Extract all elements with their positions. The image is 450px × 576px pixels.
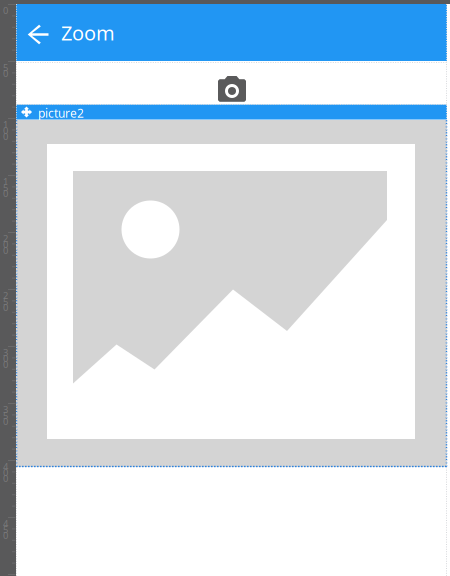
staticText: 0 bbox=[3, 187, 8, 200]
staticText: 4 bbox=[3, 517, 8, 530]
staticText: Zoom bbox=[61, 19, 115, 46]
button[interactable]: Zoom bbox=[16, 4, 447, 61]
staticText: 0 bbox=[3, 415, 8, 428]
staticText: 0 bbox=[3, 358, 8, 371]
staticText: 3 bbox=[3, 346, 8, 359]
button[interactable]: Camera bbox=[16, 61, 447, 105]
staticText: 0 bbox=[3, 130, 8, 143]
staticText: 3 bbox=[3, 403, 8, 416]
staticText: 0 bbox=[3, 301, 8, 314]
staticText: 0 bbox=[3, 4, 8, 17]
staticText: 0 bbox=[3, 466, 8, 479]
staticText: picture2 bbox=[38, 105, 84, 121]
staticText: 2 bbox=[3, 289, 8, 302]
staticText: 0 bbox=[3, 529, 8, 542]
staticText: 5 bbox=[3, 61, 8, 74]
staticText: 5 bbox=[3, 181, 8, 194]
staticText: 2 bbox=[3, 232, 8, 245]
staticText: 0 bbox=[3, 352, 8, 365]
staticText: 5 bbox=[3, 409, 8, 422]
staticText: 0 bbox=[3, 472, 8, 485]
staticText: 0 bbox=[3, 238, 8, 251]
staticText: 0 bbox=[3, 67, 8, 80]
staticText: 1 bbox=[3, 118, 8, 131]
staticText: 0 bbox=[3, 244, 8, 257]
staticText: 4 bbox=[3, 460, 8, 473]
staticText: 0 bbox=[3, 124, 8, 137]
staticText: 1 bbox=[3, 175, 8, 188]
staticText: 5 bbox=[3, 295, 8, 308]
staticText: 5 bbox=[3, 523, 8, 536]
button[interactable]: picture2 bbox=[16, 105, 447, 120]
